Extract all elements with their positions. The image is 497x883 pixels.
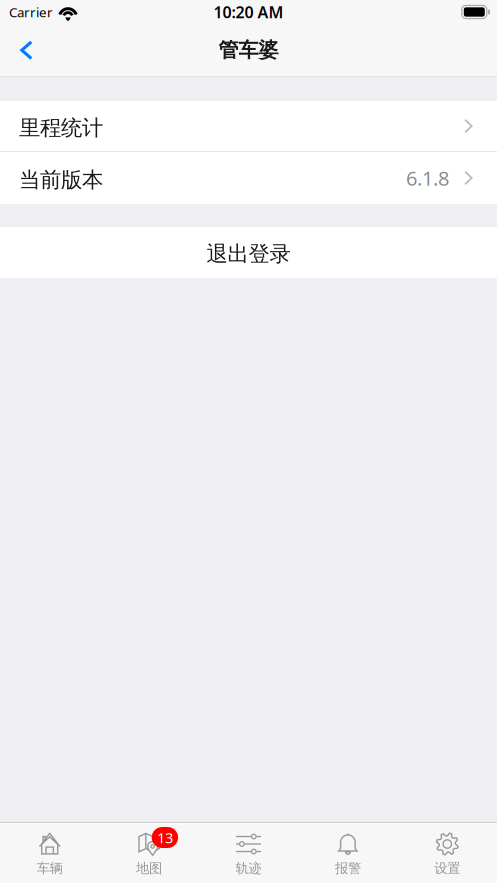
staticText: 管车婆: [218, 38, 278, 62]
staticText: Carrier: [9, 3, 53, 21]
staticText: 地图: [136, 860, 162, 876]
button[interactable]: 退出登录: [0, 227, 497, 278]
staticText: 6.1.8: [406, 165, 449, 191]
button[interactable]: 13: [99, 823, 199, 883]
staticText: 里程统计: [19, 115, 103, 141]
staticText: 10:20 AM: [213, 1, 283, 23]
button[interactable]: Back: [0, 28, 49, 72]
staticText: 报警: [335, 860, 361, 876]
button[interactable]: 报警: [298, 823, 398, 883]
staticText: 退出登录: [206, 241, 290, 267]
staticText: 设置: [434, 860, 460, 876]
button[interactable]: 里程统计: [0, 101, 497, 151]
button[interactable]: 当前版本: [0, 152, 497, 204]
staticText: 13: [157, 828, 173, 847]
button[interactable]: 设置: [398, 823, 497, 883]
staticText: 车辆: [37, 860, 63, 876]
button[interactable]: 轨迹: [199, 823, 298, 883]
button[interactable]: 车辆: [0, 823, 99, 883]
staticText: 当前版本: [19, 167, 103, 193]
staticText: 轨迹: [235, 860, 261, 876]
